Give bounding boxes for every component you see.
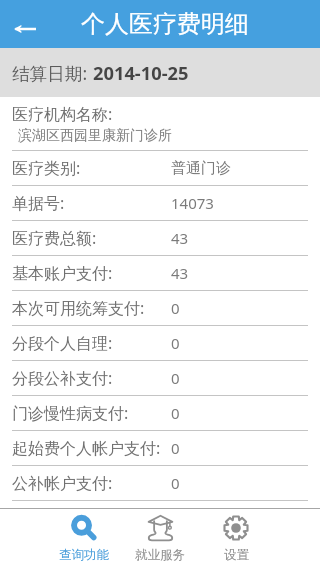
staticText: 基本账户支付: xyxy=(12,262,113,284)
staticText: 0 xyxy=(171,473,180,493)
staticText: 0 xyxy=(171,403,180,423)
button[interactable]: 分段公补支付: xyxy=(0,361,320,395)
staticText: 门诊慢性病支付: xyxy=(12,402,129,424)
button[interactable]: 单据号: xyxy=(0,186,320,220)
button[interactable]: Back xyxy=(0,0,48,48)
staticText: 就业服务 xyxy=(135,547,185,563)
button[interactable]: 基本账户支付: xyxy=(0,256,320,290)
staticText: 起始费个人帐户支付: xyxy=(12,437,161,459)
staticText: 14073 xyxy=(171,193,214,213)
button[interactable]: 分段个人自理: xyxy=(0,326,320,360)
staticText: 医疗类别: xyxy=(12,157,81,179)
staticText: 滨湖区西园里康新门诊所 xyxy=(18,127,172,145)
staticText: 2014-10-25 xyxy=(93,60,189,85)
staticText: 本次可用统筹支付: xyxy=(12,297,145,319)
staticText: 设置 xyxy=(224,547,249,563)
staticText: 公补帐户支付: xyxy=(12,472,113,494)
staticText: 0 xyxy=(171,438,180,458)
staticText: 查询功能 xyxy=(59,547,109,563)
staticText: 0 xyxy=(171,298,180,318)
button[interactable]: 就业服务 xyxy=(122,509,198,568)
button[interactable]: 医疗机构名称: xyxy=(0,97,320,150)
button[interactable]: 医疗类别: xyxy=(0,151,320,185)
staticText: 分段个人自理: xyxy=(12,332,113,354)
staticText: 0 xyxy=(171,333,180,353)
button[interactable]: 查询功能 xyxy=(46,509,122,568)
button[interactable]: 设置 xyxy=(198,509,274,568)
staticText: 结算日期: xyxy=(12,61,88,85)
staticText: 43 xyxy=(171,263,189,283)
button[interactable]: 本次可用统筹支付: xyxy=(0,291,320,325)
staticText: 医疗费总额: xyxy=(12,227,97,249)
button[interactable]: 公补帐户支付: xyxy=(0,466,320,500)
staticText: 分段公补支付: xyxy=(12,367,113,389)
button[interactable]: 起始费个人帐户支付: xyxy=(0,431,320,465)
staticText: 个人医疗费明细 xyxy=(81,9,249,39)
staticText: 43 xyxy=(171,228,189,248)
button[interactable]: 医疗费总额: xyxy=(0,221,320,255)
staticText: 0 xyxy=(171,368,180,388)
staticText: 单据号: xyxy=(12,192,65,214)
button[interactable]: 门诊慢性病支付: xyxy=(0,396,320,430)
staticText: 普通门诊 xyxy=(171,159,231,178)
staticText: 医疗机构名称: xyxy=(12,103,113,125)
